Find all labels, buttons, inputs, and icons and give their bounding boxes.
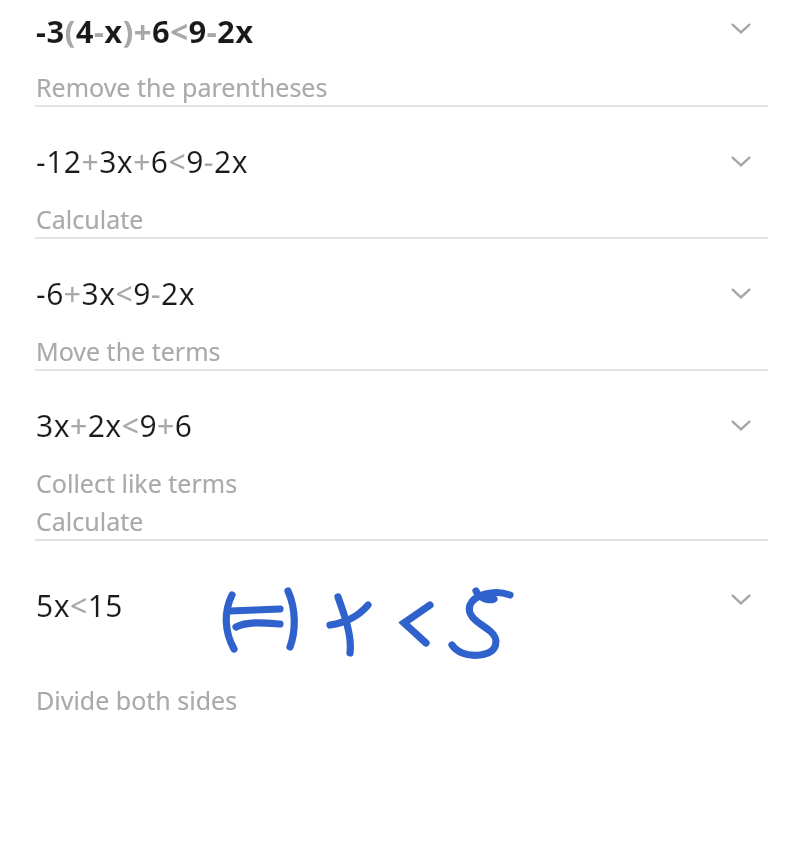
button[interactable]: Expand step: [713, 133, 769, 189]
button[interactable]: -3(4-x)+6<9-2x: [0, 0, 800, 104]
staticText: Divide both sides: [36, 683, 238, 717]
button[interactable]: 5x<15: [0, 563, 800, 717]
staticText: -3(4-x)+6<9-2x: [36, 10, 254, 52]
button[interactable]: Expand step: [713, 571, 769, 627]
staticText: Move the terms: [36, 334, 221, 368]
staticText: Calculate: [36, 202, 144, 236]
staticText: -12+3x+6<9-2x: [36, 141, 248, 182]
staticText: Calculate: [36, 504, 144, 538]
button[interactable]: Expand step: [713, 0, 769, 56]
button[interactable]: 3x+2x<9+6: [0, 397, 800, 538]
button[interactable]: Expand step: [713, 265, 769, 321]
button[interactable]: -6+3x<9-2x: [0, 265, 800, 368]
staticText: 5x<15: [36, 585, 124, 626]
staticText: -6+3x<9-2x: [36, 273, 196, 314]
staticText: Remove the parentheses: [36, 70, 328, 104]
staticText: Collect like terms: [36, 466, 238, 500]
button[interactable]: -12+3x+6<9-2x: [0, 133, 800, 236]
staticText: 3x+2x<9+6: [36, 405, 193, 446]
button[interactable]: Expand step: [713, 397, 769, 453]
